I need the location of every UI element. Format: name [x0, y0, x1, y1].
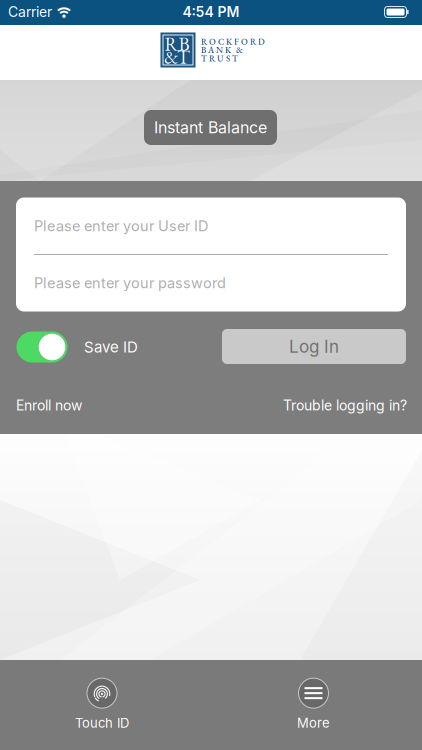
button[interactable]: Enroll now — [16, 395, 166, 415]
staticText: Trouble logging in? — [283, 397, 407, 414]
staticText: More — [297, 715, 330, 731]
staticText: Please enter your password — [34, 274, 226, 292]
staticText: 4:54 PM — [182, 3, 239, 20]
button[interactable]: Save ID — [16, 331, 67, 362]
button[interactable]: Please enter your password — [34, 255, 388, 311]
staticText: R O C K F O R D — [201, 36, 265, 47]
staticText: Instant Balance — [154, 118, 267, 137]
staticText: Enroll now — [16, 397, 82, 414]
button[interactable]: Instant Balance — [144, 110, 277, 145]
staticText: Save ID — [84, 338, 138, 356]
staticText: RB — [164, 32, 189, 56]
staticText: &T — [164, 45, 190, 69]
staticText: B A N K & — [201, 44, 243, 56]
button[interactable]: Log In — [222, 329, 406, 364]
staticText: Carrier — [8, 3, 52, 20]
button[interactable]: More — [223, 664, 403, 744]
button[interactable]: Touch ID — [12, 664, 192, 744]
staticText: Log In — [289, 336, 339, 357]
staticText: Please enter your User ID — [34, 217, 208, 235]
button[interactable]: Please enter your User ID — [34, 198, 388, 254]
button[interactable]: Trouble logging in? — [207, 395, 407, 415]
staticText: T R U S T — [201, 53, 238, 64]
staticText: Touch ID — [75, 715, 129, 731]
